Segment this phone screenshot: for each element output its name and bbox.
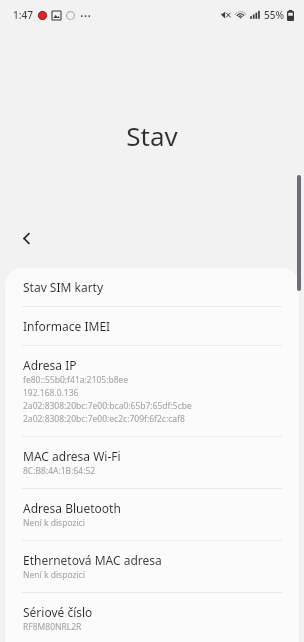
button[interactable]: Adresa Bluetooth	[5, 489, 299, 541]
staticText: 1:47	[13, 8, 33, 22]
staticText: 55%	[264, 8, 284, 22]
staticText: Sériové číslo	[23, 604, 93, 620]
staticText: RF8M80NRL2R	[23, 621, 82, 633]
button[interactable]: Adresa IP	[5, 346, 299, 437]
staticText: 2a02:8308:20bc:7e00:ec2c:709f:6f2c:caf8	[23, 413, 185, 425]
staticText: fe80::55b0:f41a:2105:b8ee	[23, 374, 129, 386]
staticText: Adresa IP	[23, 357, 77, 373]
staticText: MAC adresa Wi-Fi	[23, 448, 121, 464]
staticText: Ethernetová MAC adresa	[23, 552, 162, 568]
button[interactable]: Back	[6, 218, 46, 258]
staticText: 2a02:8308:20bc:7e00:bca0:65b7:65df:5cbe	[23, 400, 192, 412]
staticText: Stav	[0, 118, 304, 153]
button[interactable]: MAC adresa Wi-Fi	[5, 437, 299, 489]
button[interactable]: Informace IMEI	[5, 307, 299, 346]
button[interactable]: Stav SIM karty	[5, 268, 299, 307]
button[interactable]: Ethernetová MAC adresa	[5, 541, 299, 593]
button[interactable]: Sériové číslo	[5, 593, 299, 642]
staticText: Není k dispozici	[23, 569, 85, 581]
staticText: Stav SIM karty	[23, 279, 104, 295]
staticText: Adresa Bluetooth	[23, 500, 121, 516]
staticText: 8C:B8:4A:1B:64:52	[23, 465, 96, 477]
staticText: Není k dispozici	[23, 517, 85, 529]
staticText: 192.168.0.136	[23, 387, 79, 399]
staticText: Informace IMEI	[23, 318, 111, 334]
